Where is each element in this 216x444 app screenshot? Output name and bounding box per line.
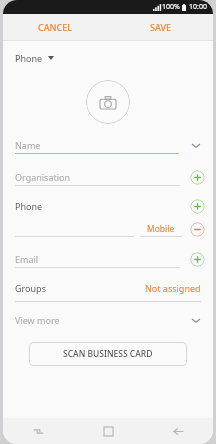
button[interactable]: SCAN BUSINESS CARD	[29, 342, 187, 366]
button[interactable]: Groups	[3, 280, 213, 296]
staticText: SAVE	[150, 21, 172, 33]
button[interactable]: View more	[3, 312, 213, 328]
button[interactable]	[15, 221, 134, 237]
staticText: 10:00	[189, 2, 207, 12]
staticText: Groups	[15, 282, 46, 294]
button[interactable]: Recents	[3, 418, 73, 444]
staticText: View more	[15, 314, 60, 326]
button[interactable]: Add field	[190, 252, 205, 267]
button[interactable]: Back	[143, 418, 213, 444]
button[interactable]: Name	[3, 136, 213, 154]
button[interactable]: Add field	[190, 199, 205, 214]
staticText: SCAN BUSINESS CARD	[63, 348, 153, 360]
button[interactable]: Mobile	[140, 221, 182, 237]
button[interactable]: Phone	[3, 50, 213, 66]
staticText: CANCEL	[38, 21, 73, 33]
button[interactable]: CANCEL	[3, 14, 108, 40]
staticText: Organisation	[15, 171, 71, 183]
staticText: Mobile	[147, 223, 175, 235]
button[interactable]: Organisation	[3, 168, 213, 186]
staticText: Phone	[15, 200, 43, 212]
staticText: 100%	[162, 2, 180, 12]
staticText: Email	[15, 253, 39, 265]
button[interactable]: Home	[73, 418, 143, 444]
staticText: Phone	[15, 52, 43, 64]
button[interactable]: Add field	[190, 170, 205, 185]
staticText: Not assigned	[145, 282, 201, 294]
button[interactable]: Expand name fields	[189, 138, 203, 152]
button[interactable]: Email	[3, 250, 213, 268]
staticText: Name	[15, 139, 41, 151]
button[interactable]: SAVE	[108, 14, 213, 40]
button[interactable]: Add contact photo	[86, 80, 130, 124]
button[interactable]: Remove field	[190, 222, 205, 237]
